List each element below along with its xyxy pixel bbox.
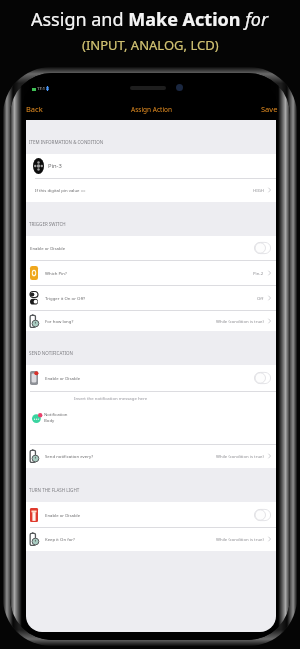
- button[interactable]: Save: [257, 100, 278, 118]
- button[interactable]: Pin-3: [26, 154, 276, 178]
- staticText: (INPUT, ANALOG, LCD): [82, 36, 219, 54]
- staticText: Insert the notification message here: [74, 395, 148, 401]
- staticText: If this digital pin value ==: [35, 187, 86, 193]
- staticText: HIGH: [253, 187, 264, 193]
- button[interactable]: Send notification every?: [26, 444, 276, 468]
- staticText: TURN THE FLASH LIGHT: [29, 487, 80, 493]
- staticText: Send notification every?: [45, 453, 94, 459]
- staticText: Pin-2: [253, 270, 264, 276]
- button[interactable]: Trigger it On or Off?: [26, 285, 276, 310]
- button[interactable]: Which Pin?: [26, 260, 276, 285]
- staticText: SEND NOTIFICATION: [29, 350, 73, 356]
- button[interactable]: Back: [25, 100, 47, 118]
- button[interactable]: Toggle Enable or Disable: [254, 372, 271, 384]
- button[interactable]: Insert the notification message here: [26, 391, 276, 444]
- staticText: Trigger it On or Off?: [45, 295, 86, 301]
- staticText: Enable or Disable: [45, 375, 81, 381]
- staticText: Assign Action: [131, 105, 173, 114]
- button[interactable]: For how long?: [26, 310, 276, 331]
- staticText: While (condition is true): [216, 536, 264, 542]
- staticText: TRIGGER SWITCH: [29, 221, 66, 227]
- staticText: For how long?: [45, 318, 74, 324]
- staticText: Which Pin?: [45, 270, 67, 276]
- button[interactable]: Enable or Disable: [26, 236, 276, 260]
- button[interactable]: Toggle Enable or Disable: [254, 509, 271, 521]
- staticText: ITEM INFORMATION & CONDITION: [29, 139, 104, 145]
- staticText: Keep it On for?: [45, 536, 75, 542]
- staticText: Notification Body: [44, 411, 68, 424]
- staticText: Enable or Disable: [30, 245, 66, 251]
- button[interactable]: Toggle Enable or Disable: [254, 242, 271, 254]
- button[interactable]: Enable or Disable: [26, 365, 276, 391]
- button[interactable]: Enable or Disable: [26, 502, 276, 527]
- button[interactable]: If this digital pin value ==: [26, 178, 276, 202]
- staticText: Off: [257, 295, 264, 301]
- staticText: While (condition is true): [216, 318, 264, 324]
- staticText: Back: [26, 104, 43, 114]
- staticText: Enable or Disable: [45, 512, 81, 518]
- staticText: 17:1: [37, 86, 45, 91]
- staticText: Assign and Make Action for: [31, 7, 269, 32]
- staticText: Pin-3: [48, 162, 62, 170]
- staticText: Save: [261, 104, 278, 114]
- staticText: While (condition is true): [216, 453, 264, 459]
- button[interactable]: Keep it On for?: [26, 527, 276, 551]
